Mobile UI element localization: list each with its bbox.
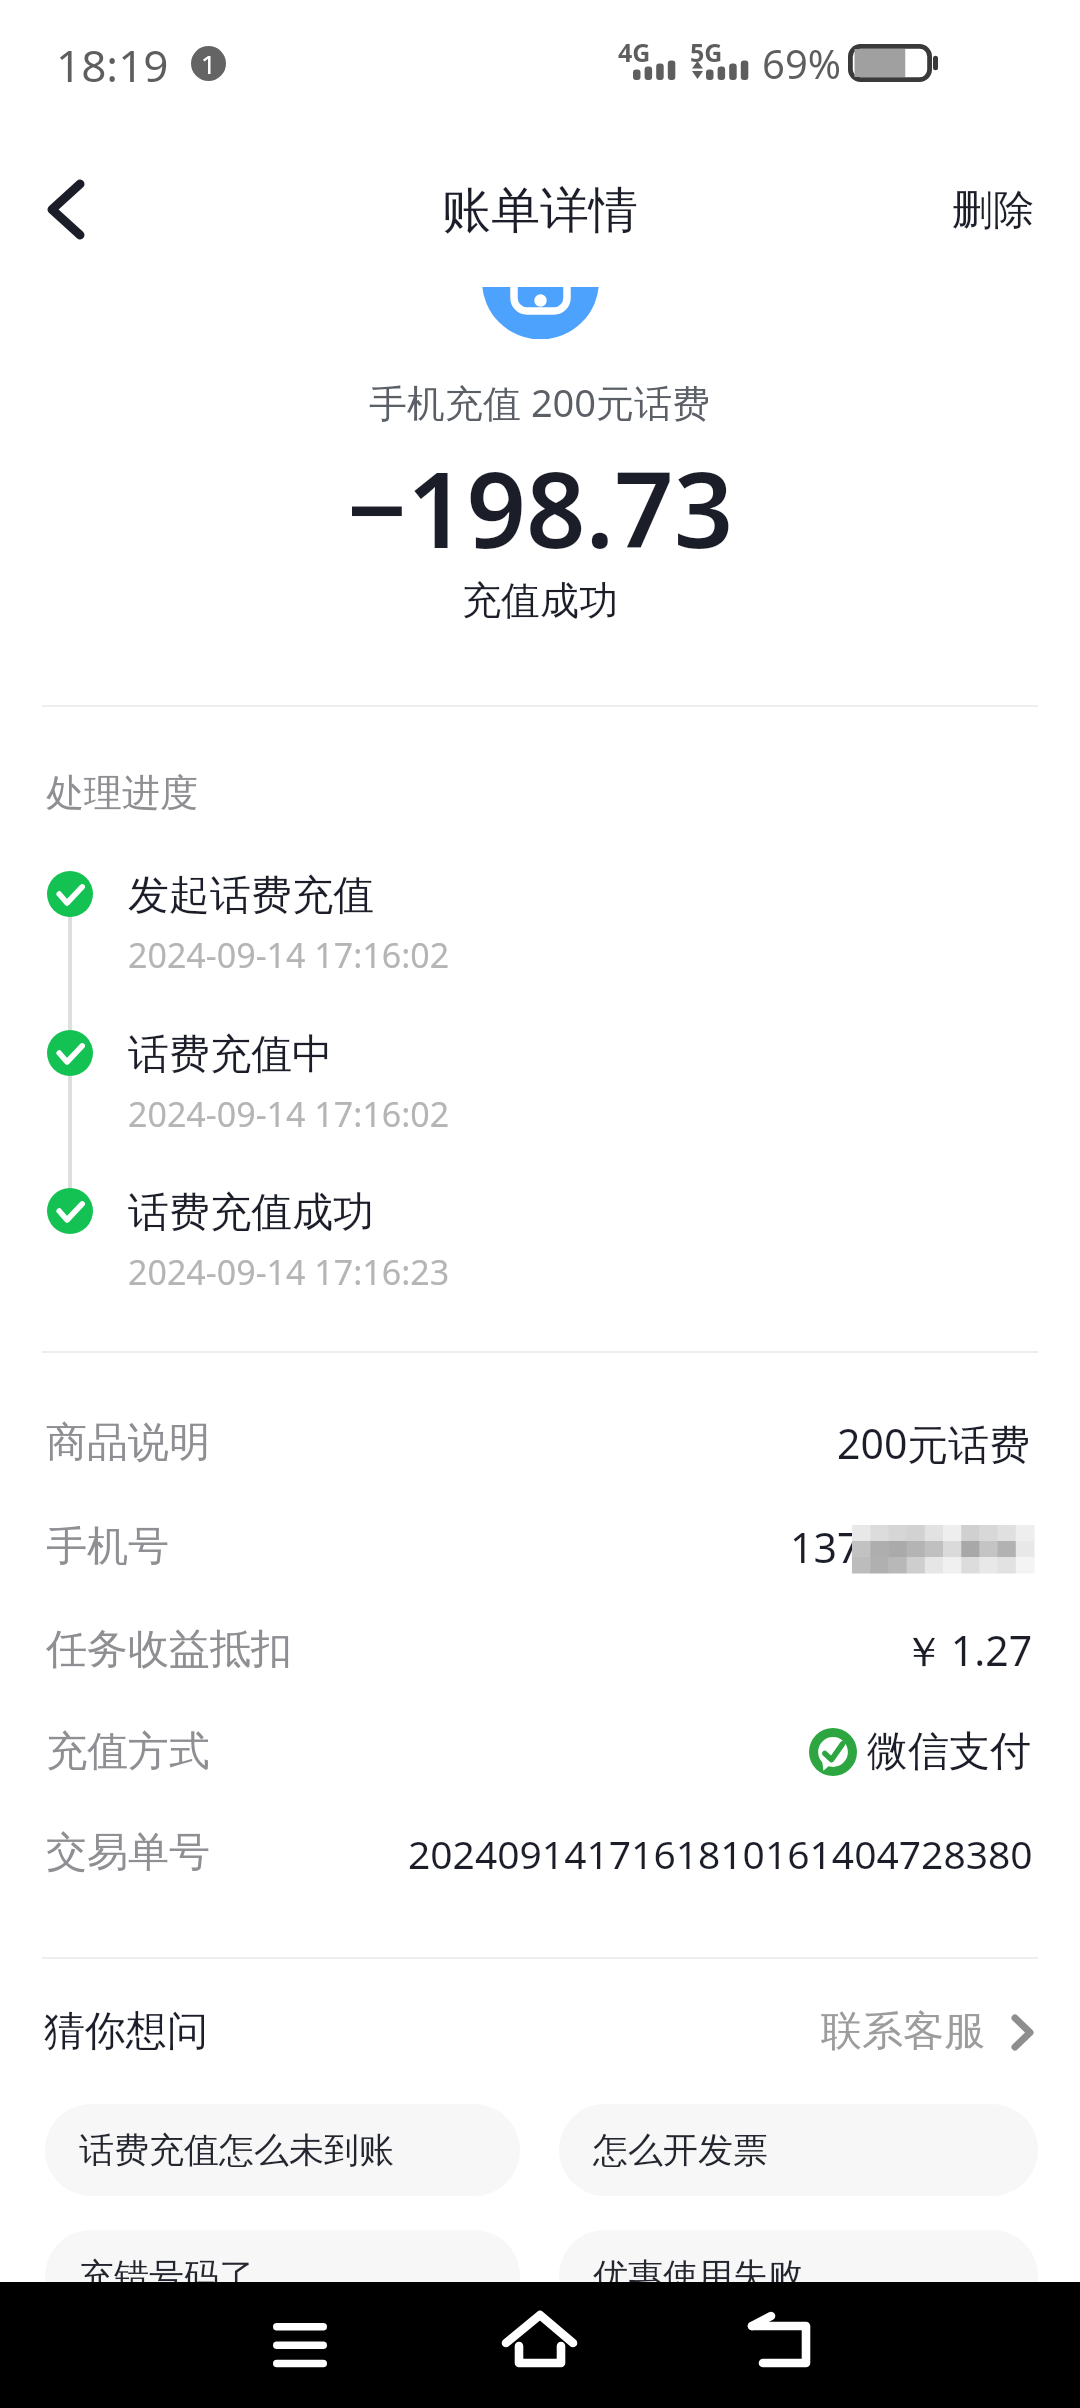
staticText: 137 bbox=[790, 1519, 861, 1575]
button[interactable]: Home bbox=[501, 2306, 579, 2376]
staticText: 手机充值 200元话费 bbox=[369, 376, 711, 428]
staticText: 优惠使用失败 bbox=[593, 2254, 803, 2298]
staticText: 手机号 bbox=[46, 1521, 169, 1573]
staticText: ￥ 1.27 bbox=[903, 1622, 1033, 1678]
button[interactable]: Back bbox=[20, 163, 112, 255]
staticText: 2024-09-14 17:16:23 bbox=[128, 1249, 450, 1295]
button[interactable]: 联系客服 bbox=[821, 1996, 1033, 2068]
staticText: 处理进度 bbox=[46, 769, 198, 817]
button[interactable]: 话费充值怎么未到账 bbox=[45, 2104, 520, 2196]
button[interactable]: 怎么开发票 bbox=[559, 2104, 1038, 2196]
staticText: 商品说明 bbox=[46, 1417, 210, 1469]
button[interactable]: 删除 bbox=[946, 171, 1040, 251]
staticText: 2024091417161810161404728380 bbox=[408, 1827, 1033, 1880]
staticText: 200元话费 bbox=[837, 1415, 1031, 1471]
staticText: 怎么开发票 bbox=[593, 2128, 768, 2172]
button[interactable]: 优惠使用失败 bbox=[559, 2230, 1038, 2322]
staticText: 删除 bbox=[952, 185, 1034, 237]
staticText: 充错号码了 bbox=[79, 2254, 254, 2298]
staticText: 微信支付 bbox=[867, 1726, 1031, 1778]
staticText: 猜你想问 bbox=[44, 2006, 208, 2058]
staticText: 1 bbox=[201, 46, 216, 81]
staticText: 话费充值中 bbox=[128, 1029, 333, 1081]
staticText: 充值成功 bbox=[462, 576, 618, 625]
staticText: −198.73 bbox=[347, 437, 734, 579]
staticText: 话费充值怎么未到账 bbox=[79, 2128, 394, 2172]
button[interactable]: 充错号码了 bbox=[45, 2230, 520, 2322]
staticText: 2024-09-14 17:16:02 bbox=[128, 1091, 450, 1137]
staticText: 5G bbox=[690, 35, 723, 69]
staticText: 任务收益抵扣 bbox=[46, 1624, 292, 1676]
staticText: 4G bbox=[618, 35, 651, 69]
staticText: 69% bbox=[762, 36, 841, 90]
staticText: 发起话费充值 bbox=[128, 870, 374, 922]
staticText: 话费充值成功 bbox=[128, 1187, 374, 1239]
staticText: 充值方式 bbox=[46, 1726, 210, 1778]
button[interactable]: Back bbox=[745, 2310, 820, 2380]
button[interactable]: Recents bbox=[263, 2310, 337, 2380]
staticText: 18:19 bbox=[56, 35, 169, 95]
staticText: 账单详情 bbox=[442, 180, 638, 242]
staticText: 交易单号 bbox=[46, 1827, 210, 1879]
staticText: 联系客服 bbox=[821, 2006, 985, 2058]
staticText: 2024-09-14 17:16:02 bbox=[128, 932, 450, 978]
